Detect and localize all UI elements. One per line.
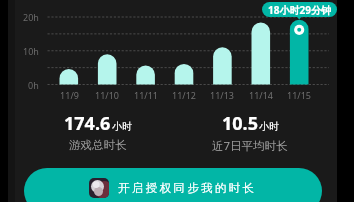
staticText: 开启授权同步我的时长 <box>117 181 255 195</box>
staticText: 11/15 <box>287 89 311 101</box>
staticText: 游戏总时长 <box>69 138 127 152</box>
staticText: 11/13 <box>210 89 234 101</box>
staticText: 小时 <box>112 120 132 133</box>
button[interactable]: 开启授权同步我的时长 <box>24 168 322 202</box>
staticText: 0h <box>28 79 39 91</box>
staticText: 10.5 <box>222 111 258 136</box>
staticText: 11/14 <box>249 89 273 101</box>
staticText: 11/10 <box>95 89 119 101</box>
button[interactable]: 18小时29分钟 <box>262 2 337 17</box>
staticText: 11/11 <box>134 89 158 101</box>
staticText: 11/12 <box>172 89 196 101</box>
staticText: 18小时29分钟 <box>268 3 331 17</box>
staticText: 174.6 <box>64 111 111 136</box>
staticText: 10h <box>23 45 39 57</box>
staticText: 近7日平均时长 <box>212 138 288 153</box>
staticText: 小时 <box>259 120 279 133</box>
staticText: 20h <box>23 11 39 23</box>
staticText: 11/9 <box>60 89 79 101</box>
